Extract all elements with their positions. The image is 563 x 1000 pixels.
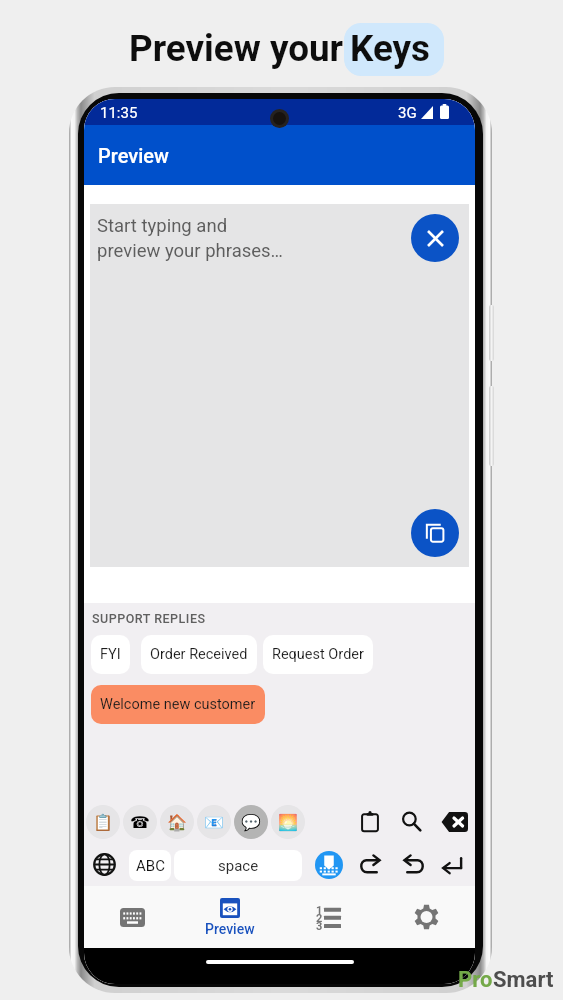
button[interactable]: Order Received bbox=[141, 635, 257, 674]
staticText: Welcome new customer bbox=[100, 696, 256, 713]
staticText: FYI bbox=[100, 646, 121, 663]
button[interactable]: Redo bbox=[356, 850, 385, 879]
staticText: 1 bbox=[316, 904, 323, 917]
button[interactable]: FYI bbox=[91, 635, 130, 674]
staticText: SUPPORT REPLIES bbox=[92, 611, 206, 626]
button[interactable]: Settings bbox=[377, 886, 475, 948]
button[interactable]: Keyboard app bbox=[314, 850, 343, 879]
button[interactable]: Keyboard bbox=[84, 886, 181, 948]
button[interactable]: space bbox=[174, 850, 302, 881]
staticText: 3 bbox=[316, 920, 323, 933]
button[interactable]: Change language bbox=[89, 849, 119, 879]
staticText: 3G bbox=[398, 104, 417, 122]
button[interactable]: Emoji category bbox=[234, 805, 268, 839]
staticText: 🏠 bbox=[167, 813, 187, 832]
staticText: 💬 bbox=[241, 813, 261, 832]
button[interactable]: ABC bbox=[129, 850, 171, 881]
staticText: Keys bbox=[350, 27, 430, 70]
button[interactable]: Clear text bbox=[411, 214, 459, 262]
button[interactable]: Emoji category bbox=[160, 805, 194, 839]
button[interactable]: Welcome new customer bbox=[91, 685, 265, 724]
staticText: ☎️ bbox=[130, 813, 150, 832]
button[interactable]: Copy text bbox=[411, 509, 459, 557]
staticText: 📧 bbox=[204, 813, 224, 832]
staticText: Request Order bbox=[272, 646, 364, 663]
button[interactable]: Clipboard bbox=[354, 806, 385, 837]
button[interactable]: Start typing and preview your phrases… bbox=[90, 204, 469, 567]
staticText: 📋 bbox=[93, 813, 113, 832]
button[interactable]: Backspace bbox=[439, 806, 470, 837]
staticText: Preview your bbox=[129, 27, 344, 70]
button[interactable]: Undo bbox=[398, 850, 427, 879]
staticText: ABC bbox=[136, 857, 165, 875]
button[interactable]: Search bbox=[396, 806, 427, 837]
staticText: Preview bbox=[98, 144, 169, 167]
staticText: space bbox=[218, 857, 259, 875]
button[interactable]: Request Order bbox=[263, 635, 373, 674]
staticText: Smart bbox=[493, 967, 554, 993]
staticText: Pro bbox=[458, 967, 493, 993]
button[interactable]: Emoji category bbox=[197, 805, 231, 839]
button[interactable]: Phrase list bbox=[279, 886, 377, 948]
staticText: Preview bbox=[205, 921, 255, 937]
staticText: Order Received bbox=[150, 646, 248, 663]
button[interactable]: Emoji category bbox=[86, 805, 120, 839]
button[interactable]: Enter bbox=[437, 850, 466, 879]
staticText: Start typing and preview your phrases… bbox=[97, 215, 283, 261]
staticText: 2 bbox=[316, 912, 323, 925]
button[interactable]: Emoji category bbox=[271, 805, 305, 839]
staticText: 11:35 bbox=[100, 104, 138, 122]
button[interactable]: Preview bbox=[181, 886, 279, 948]
button[interactable]: Emoji category bbox=[123, 805, 157, 839]
staticText: 🌅 bbox=[278, 813, 298, 832]
